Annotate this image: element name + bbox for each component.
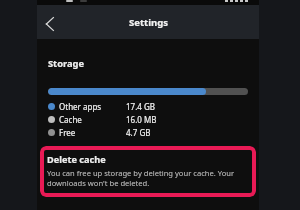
button[interactable]: Delete cache bbox=[40, 146, 256, 197]
staticText: 16.0 MB bbox=[126, 114, 157, 125]
staticText: Settings bbox=[129, 16, 168, 29]
staticText: 17.4 GB bbox=[126, 101, 155, 112]
staticText: You can free up storage by deleting your… bbox=[47, 168, 250, 188]
staticText: Free bbox=[59, 127, 76, 138]
staticText: 4.7 GB bbox=[126, 127, 151, 138]
staticText: Cache bbox=[59, 114, 82, 125]
button[interactable]: Back bbox=[38, 9, 64, 35]
staticText: Delete cache bbox=[47, 153, 106, 166]
staticText: Other apps bbox=[59, 101, 102, 112]
staticText: Storage bbox=[48, 57, 84, 70]
